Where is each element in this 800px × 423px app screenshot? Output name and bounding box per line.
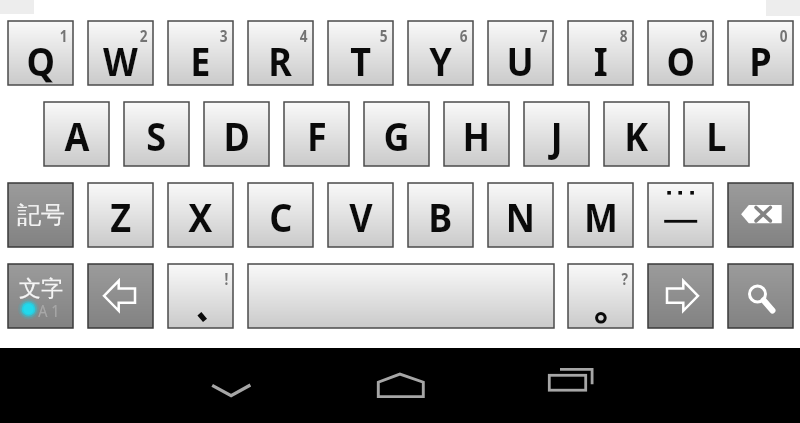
staticText: 0: [780, 25, 788, 47]
button[interactable]: Japanese comma and exclamation mark: [168, 264, 233, 328]
button[interactable]: Move cursor right: [648, 264, 713, 328]
button[interactable]: K: [604, 102, 669, 166]
button[interactable]: L: [684, 102, 749, 166]
button[interactable]: Y: [408, 21, 473, 85]
button[interactable]: Switch input mode: [8, 264, 73, 328]
button[interactable]: B: [408, 183, 473, 247]
button[interactable]: Japanese period and question mark: [568, 264, 633, 328]
button[interactable]: G: [364, 102, 429, 166]
staticText: 文字: [19, 275, 63, 303]
staticText: M: [584, 189, 618, 243]
staticText: 9: [700, 25, 708, 47]
button[interactable]: E: [168, 21, 233, 85]
staticText: K: [624, 108, 649, 162]
button[interactable]: Home: [370, 360, 430, 408]
button[interactable]: I: [568, 21, 633, 85]
staticText: 3: [220, 25, 228, 47]
staticText: S: [146, 108, 167, 162]
staticText: 記号: [17, 200, 65, 230]
button[interactable]: P: [728, 21, 793, 85]
staticText: J: [551, 108, 563, 162]
staticText: N: [506, 189, 535, 243]
button[interactable]: Backspace: [728, 183, 793, 247]
staticText: E: [190, 33, 211, 87]
button[interactable]: V: [328, 183, 393, 247]
staticText: ?: [622, 268, 628, 290]
staticText: 6: [460, 25, 468, 47]
staticText: A 1: [38, 300, 60, 322]
button[interactable]: T: [328, 21, 393, 85]
button[interactable]: Search: [728, 264, 793, 328]
button[interactable]: Recent apps: [540, 360, 600, 408]
staticText: Y: [429, 33, 453, 87]
staticText: 2: [140, 25, 148, 47]
button[interactable]: Z: [88, 183, 153, 247]
staticText: 8: [620, 25, 628, 47]
staticText: Z: [110, 189, 132, 243]
button[interactable]: Ellipsis and long vowel mark: [648, 183, 713, 247]
staticText: I: [594, 33, 608, 87]
button[interactable]: C: [248, 183, 313, 247]
button[interactable]: M: [568, 183, 633, 247]
button[interactable]: J: [524, 102, 589, 166]
staticText: C: [269, 189, 293, 243]
staticText: F: [307, 108, 327, 162]
staticText: R: [268, 33, 293, 87]
staticText: 1: [60, 25, 68, 47]
staticText: U: [506, 33, 534, 87]
staticText: !: [224, 268, 229, 290]
button[interactable]: A: [44, 102, 109, 166]
staticText: O: [667, 33, 695, 87]
staticText: H: [462, 108, 490, 162]
button[interactable]: W: [88, 21, 153, 85]
button[interactable]: X: [168, 183, 233, 247]
staticText: G: [383, 108, 410, 162]
button[interactable]: R: [248, 21, 313, 85]
button[interactable]: S: [124, 102, 189, 166]
button[interactable]: U: [488, 21, 553, 85]
staticText: A: [64, 108, 90, 162]
staticText: T: [350, 33, 372, 87]
button[interactable]: D: [204, 102, 269, 166]
staticText: X: [188, 189, 213, 243]
staticText: D: [223, 108, 250, 162]
staticText: 7: [540, 25, 548, 47]
staticText: P: [749, 33, 772, 87]
button[interactable]: N: [488, 183, 553, 247]
button[interactable]: Move cursor left: [88, 264, 153, 328]
staticText: 4: [300, 25, 308, 47]
button[interactable]: Q: [8, 21, 73, 85]
button[interactable]: Space: [248, 264, 554, 328]
staticText: W: [103, 33, 138, 87]
staticText: 5: [380, 25, 388, 47]
staticText: L: [706, 108, 727, 162]
button[interactable]: O: [648, 21, 713, 85]
button[interactable]: Hide keyboard: [196, 360, 266, 408]
button[interactable]: H: [444, 102, 509, 166]
staticText: V: [349, 189, 373, 243]
button[interactable]: F: [284, 102, 349, 166]
staticText: Q: [27, 33, 55, 87]
staticText: B: [428, 189, 453, 243]
button[interactable]: 記号: [8, 183, 73, 247]
